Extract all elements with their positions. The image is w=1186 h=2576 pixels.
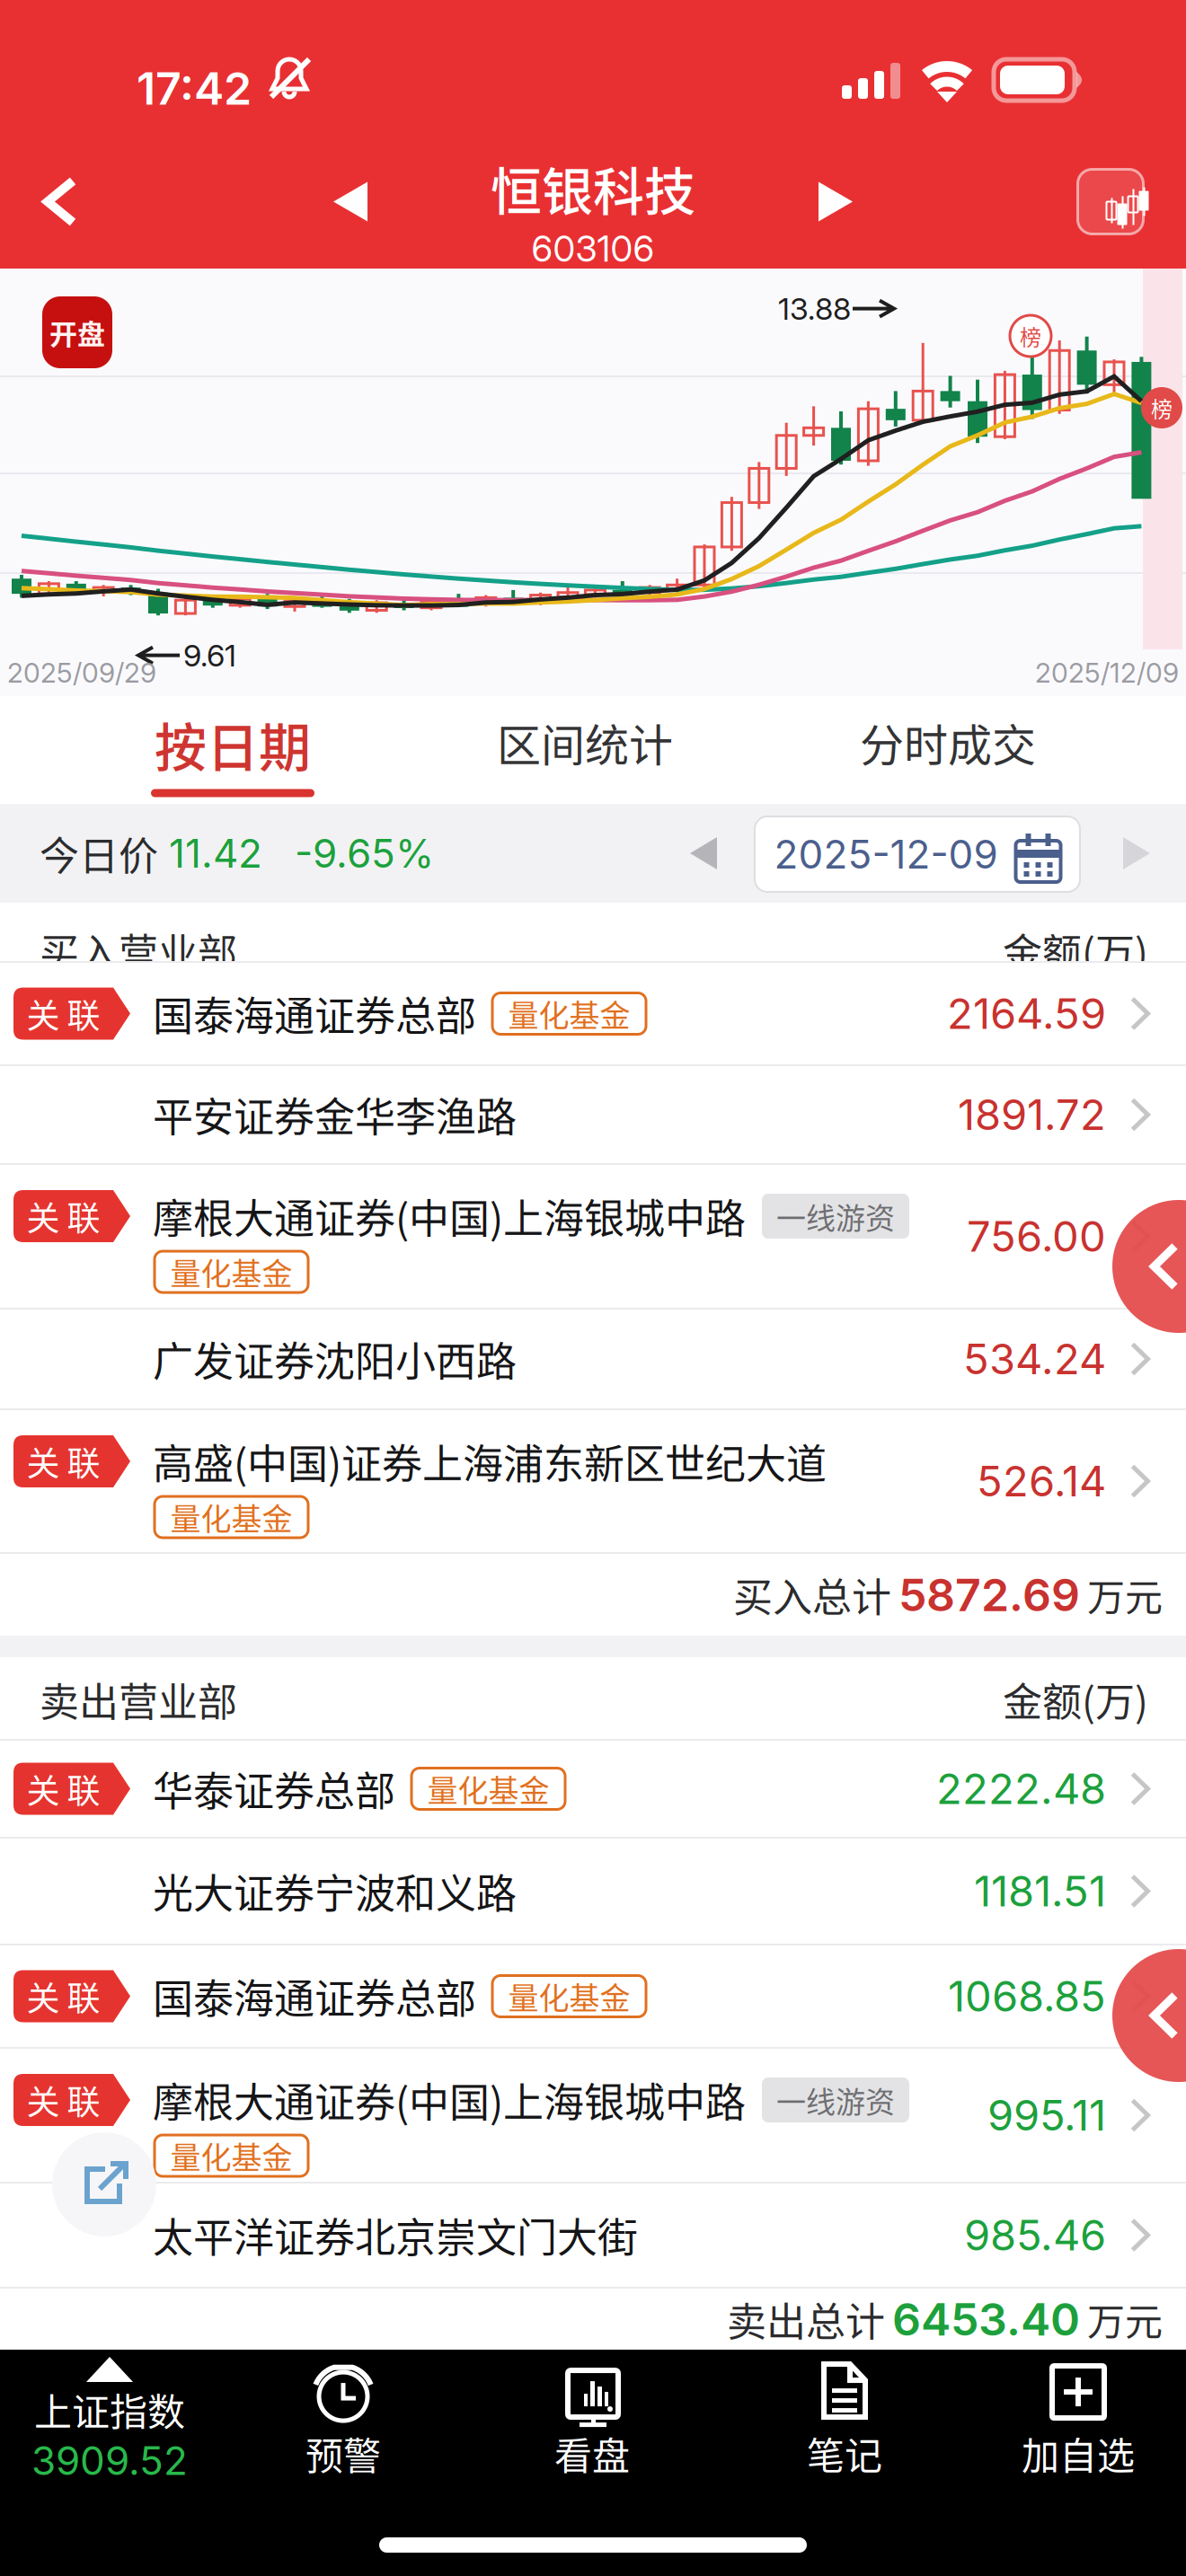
staticText: 关 联	[27, 1765, 100, 1813]
staticText: 光大证券宁波和义路	[153, 1862, 517, 1920]
staticText: 摩根大通证券(中国)上海银城中路	[153, 2071, 746, 2129]
staticText: 高盛(中国)证券上海浦东新区世纪大道	[153, 1432, 827, 1491]
button[interactable]: Collapse	[1112, 1949, 1186, 2082]
staticText: 3909.52	[31, 2437, 188, 2484]
staticText: 万元	[1087, 1567, 1163, 1622]
button[interactable]: 2025-12-09	[755, 816, 1080, 892]
staticText: 量化基金	[170, 2134, 292, 2178]
staticText: 2222.48	[936, 1763, 1106, 1814]
staticText: 2025/12/09	[1035, 657, 1179, 689]
staticText: 金额(万)	[1003, 1671, 1148, 1728]
staticText: 526.14	[977, 1456, 1106, 1507]
staticText: 开盘	[49, 312, 105, 353]
staticText: 985.46	[964, 2210, 1106, 2261]
staticText: 5872.69	[898, 1568, 1080, 1622]
button[interactable]: 看盘	[475, 2357, 709, 2485]
staticText: 关 联	[27, 1437, 100, 1485]
button[interactable]: 区间统计	[423, 696, 747, 804]
button[interactable]: 关 联	[0, 1741, 1186, 1837]
button[interactable]: Next stock	[786, 135, 885, 269]
staticText: 加自选	[1022, 2426, 1135, 2481]
staticText: 分时成交	[860, 710, 1036, 774]
button[interactable]: 关 联	[0, 1410, 1186, 1552]
staticText: 买入营业部	[40, 922, 237, 979]
staticText: 量化基金	[427, 1767, 549, 1811]
staticText: 国泰海通证券总部	[153, 984, 476, 1043]
button[interactable]: 按日期	[71, 696, 394, 804]
button[interactable]: 太平洋证券北京崇文门大街	[0, 2183, 1186, 2287]
staticText: 买入总计	[733, 1566, 891, 1623]
staticText: 万元	[1087, 2292, 1163, 2346]
staticText: -9.65%	[262, 829, 434, 877]
staticText: 上证指数	[34, 2382, 185, 2437]
button[interactable]: Back	[11, 135, 110, 269]
staticText: 卖出总计	[727, 2290, 885, 2348]
button[interactable]: 关 联	[0, 1945, 1186, 2047]
staticText: 17:42	[137, 61, 252, 115]
button[interactable]: 分时成交	[786, 696, 1110, 804]
button[interactable]: Next day	[1098, 804, 1175, 903]
button[interactable]: 上证指数	[0, 2357, 226, 2485]
staticText: 9.61	[183, 637, 236, 674]
staticText: 2025-12-09	[774, 830, 998, 878]
button[interactable]: 关 联	[0, 1165, 1186, 1308]
button[interactable]: 加自选	[961, 2357, 1186, 2485]
button[interactable]: Share	[52, 2132, 156, 2236]
staticText: 平安证券金华李渔路	[153, 1085, 517, 1144]
staticText: 今日价	[40, 825, 158, 882]
staticText: 1891.72	[958, 1089, 1106, 1140]
button[interactable]: 关 联	[0, 963, 1186, 1064]
staticText: 关 联	[27, 1192, 100, 1240]
button[interactable]: Collapse	[1112, 1200, 1186, 1333]
staticText: 太平洋证券北京崇文门大街	[153, 2206, 638, 2264]
staticText: 603106	[531, 227, 655, 270]
button[interactable]: 广发证券沈阳小西路	[0, 1310, 1186, 1408]
staticText: 看盘	[554, 2426, 630, 2481]
staticText: 按日期	[155, 706, 311, 782]
staticText: 6453.40	[892, 2292, 1080, 2346]
staticText: 1181.51	[974, 1866, 1106, 1917]
staticText: 关 联	[27, 990, 100, 1038]
staticText: 量化基金	[508, 1974, 630, 2018]
staticText: 2164.59	[947, 988, 1106, 1039]
button[interactable]: 预警	[226, 2357, 460, 2485]
staticText: 1068.85	[948, 1971, 1106, 2022]
staticText: 广发证券沈阳小西路	[153, 1330, 517, 1388]
staticText: 笔记	[807, 2426, 882, 2481]
staticText: 量化基金	[170, 1250, 292, 1294]
staticText: 榜	[1151, 392, 1173, 423]
button[interactable]: Chart style	[1061, 135, 1160, 269]
staticText: 华泰证券总部	[153, 1759, 395, 1818]
staticText: 量化基金	[508, 992, 630, 1036]
staticText: 预警	[305, 2426, 381, 2481]
staticText: 摩根大通证券(中国)上海银城中路	[153, 1187, 746, 1245]
button[interactable]: 平安证券金华李渔路	[0, 1066, 1186, 1163]
button[interactable]: Previous day	[665, 804, 742, 903]
staticText: 11.42	[158, 829, 262, 877]
staticText: 恒银科技	[491, 151, 695, 225]
staticText: 关 联	[27, 1972, 100, 2020]
staticText: 卖出营业部	[40, 1671, 237, 1728]
staticText: 13.88	[778, 290, 851, 327]
staticText: 国泰海通证券总部	[153, 1967, 476, 2026]
staticText: 一线游资	[776, 2078, 895, 2121]
staticText: 2025/09/29	[7, 657, 156, 689]
button[interactable]: 光大证券宁波和义路	[0, 1839, 1186, 1944]
staticText: 一线游资	[776, 1195, 895, 1238]
staticText: 榜	[1020, 320, 1041, 352]
button[interactable]: 笔记	[728, 2357, 961, 2485]
staticText: 534.24	[963, 1333, 1106, 1385]
staticText: 量化基金	[170, 1495, 292, 1539]
staticText: 756.00	[967, 1211, 1106, 1262]
staticText: 区间统计	[497, 710, 673, 774]
staticText: 995.11	[987, 2090, 1106, 2141]
staticText: 关 联	[27, 2076, 100, 2124]
button[interactable]: 关 联	[0, 2049, 1186, 2182]
button[interactable]: Previous stock	[301, 135, 400, 269]
staticText: 金额(万)	[1003, 922, 1148, 979]
